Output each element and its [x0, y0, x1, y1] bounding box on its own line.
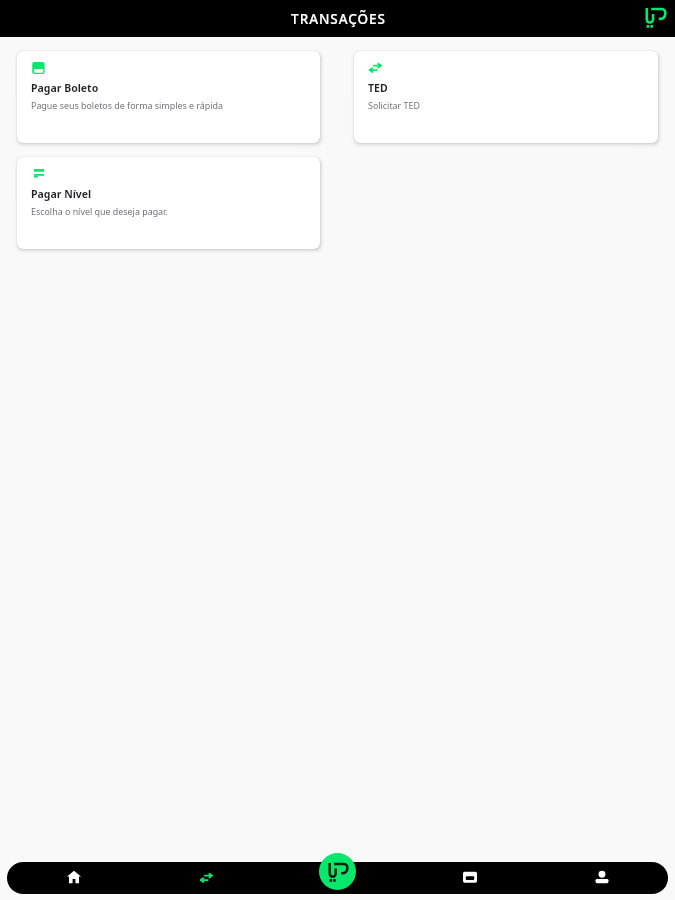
staticText: Escolha o nível que deseja pagar. [31, 205, 168, 217]
staticText: Pagar Boleto [31, 81, 99, 95]
button[interactable]: Início [7, 862, 140, 894]
button[interactable]: Logo UP [642, 4, 668, 30]
button[interactable]: Pagar Boleto [17, 51, 320, 143]
staticText: TRANSAÇÕES [291, 10, 386, 28]
staticText: Pague seus boletos de forma simples e rá… [31, 99, 224, 111]
staticText: Pagar Nível [31, 187, 92, 201]
button[interactable]: Cartões [404, 862, 536, 894]
button[interactable]: Transações [140, 862, 272, 894]
staticText: Solicitar TED [368, 99, 420, 111]
button[interactable]: Pagar Nível [17, 157, 320, 249]
button[interactable]: Abrir menu UP [319, 853, 356, 890]
button[interactable]: Perfil [536, 862, 668, 894]
staticText: TED [368, 81, 388, 95]
button[interactable]: TED [354, 51, 658, 143]
